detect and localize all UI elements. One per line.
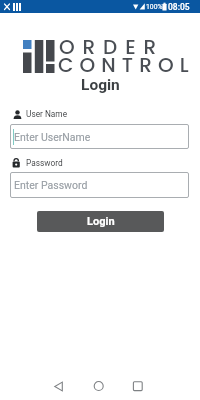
staticText: 08:05 <box>168 2 190 12</box>
staticText: Login <box>81 76 120 94</box>
staticText: Enter Password <box>14 179 88 191</box>
staticText: CONTROL <box>58 51 195 79</box>
staticText: User Name <box>26 109 68 119</box>
staticText: Password <box>26 158 63 168</box>
staticText: 100% <box>146 3 163 11</box>
staticText: Login <box>87 215 115 228</box>
staticText: Enter UserName <box>14 131 91 143</box>
staticText: ORDER <box>59 33 165 61</box>
